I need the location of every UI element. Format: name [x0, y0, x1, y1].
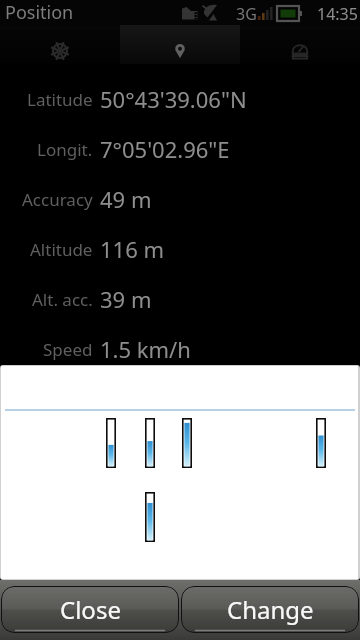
- button[interactable]: Speed: [240, 25, 360, 64]
- staticText: Speed: [43, 338, 93, 361]
- staticText: Latitude: [27, 88, 93, 111]
- staticText: 3G: [236, 3, 257, 25]
- staticText: 1.5 km/h: [100, 334, 191, 364]
- button[interactable]: Change: [181, 586, 359, 633]
- staticText: 7°05'02.96"E: [100, 134, 230, 164]
- button[interactable]: Close: [1, 586, 179, 633]
- staticText: Position: [5, 0, 74, 24]
- button[interactable]: Settings: [0, 25, 120, 64]
- staticText: Altitude: [30, 238, 93, 261]
- staticText: Alt. acc.: [32, 288, 93, 311]
- staticText: Close: [60, 593, 121, 626]
- staticText: 50°43'39.06"N: [100, 84, 247, 114]
- staticText: Change: [227, 593, 314, 626]
- staticText: 116 m: [100, 234, 165, 264]
- button[interactable]: Position: [120, 25, 240, 64]
- staticText: 39 m: [100, 284, 152, 314]
- staticText: 49 m: [100, 184, 152, 214]
- staticText: Longit.: [37, 138, 93, 161]
- staticText: 14:35: [317, 3, 358, 25]
- staticText: Accuracy: [22, 188, 93, 211]
